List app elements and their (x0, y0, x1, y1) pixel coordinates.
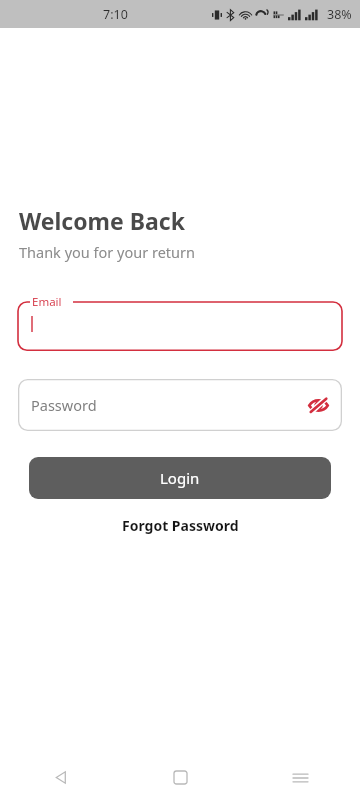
button[interactable]: Home (120, 755, 240, 800)
button[interactable]: Login (29, 457, 331, 499)
staticText: 7:10 (103, 6, 128, 23)
button[interactable]: Recent apps (240, 755, 360, 800)
staticText: Password (31, 395, 97, 415)
staticText: Welcome Back (19, 205, 185, 236)
staticText: 38% (327, 6, 352, 23)
button[interactable]: Show password (302, 389, 334, 421)
button[interactable]: Email (18, 294, 342, 351)
button[interactable]: Password (18, 379, 342, 431)
button[interactable]: Forgot Password (114, 513, 247, 538)
staticText: Thank you for your return (19, 242, 195, 262)
staticText: Forgot Password (122, 516, 239, 535)
staticText: Login (160, 468, 200, 488)
staticText: Email (32, 294, 62, 310)
button[interactable]: Back (0, 755, 120, 800)
